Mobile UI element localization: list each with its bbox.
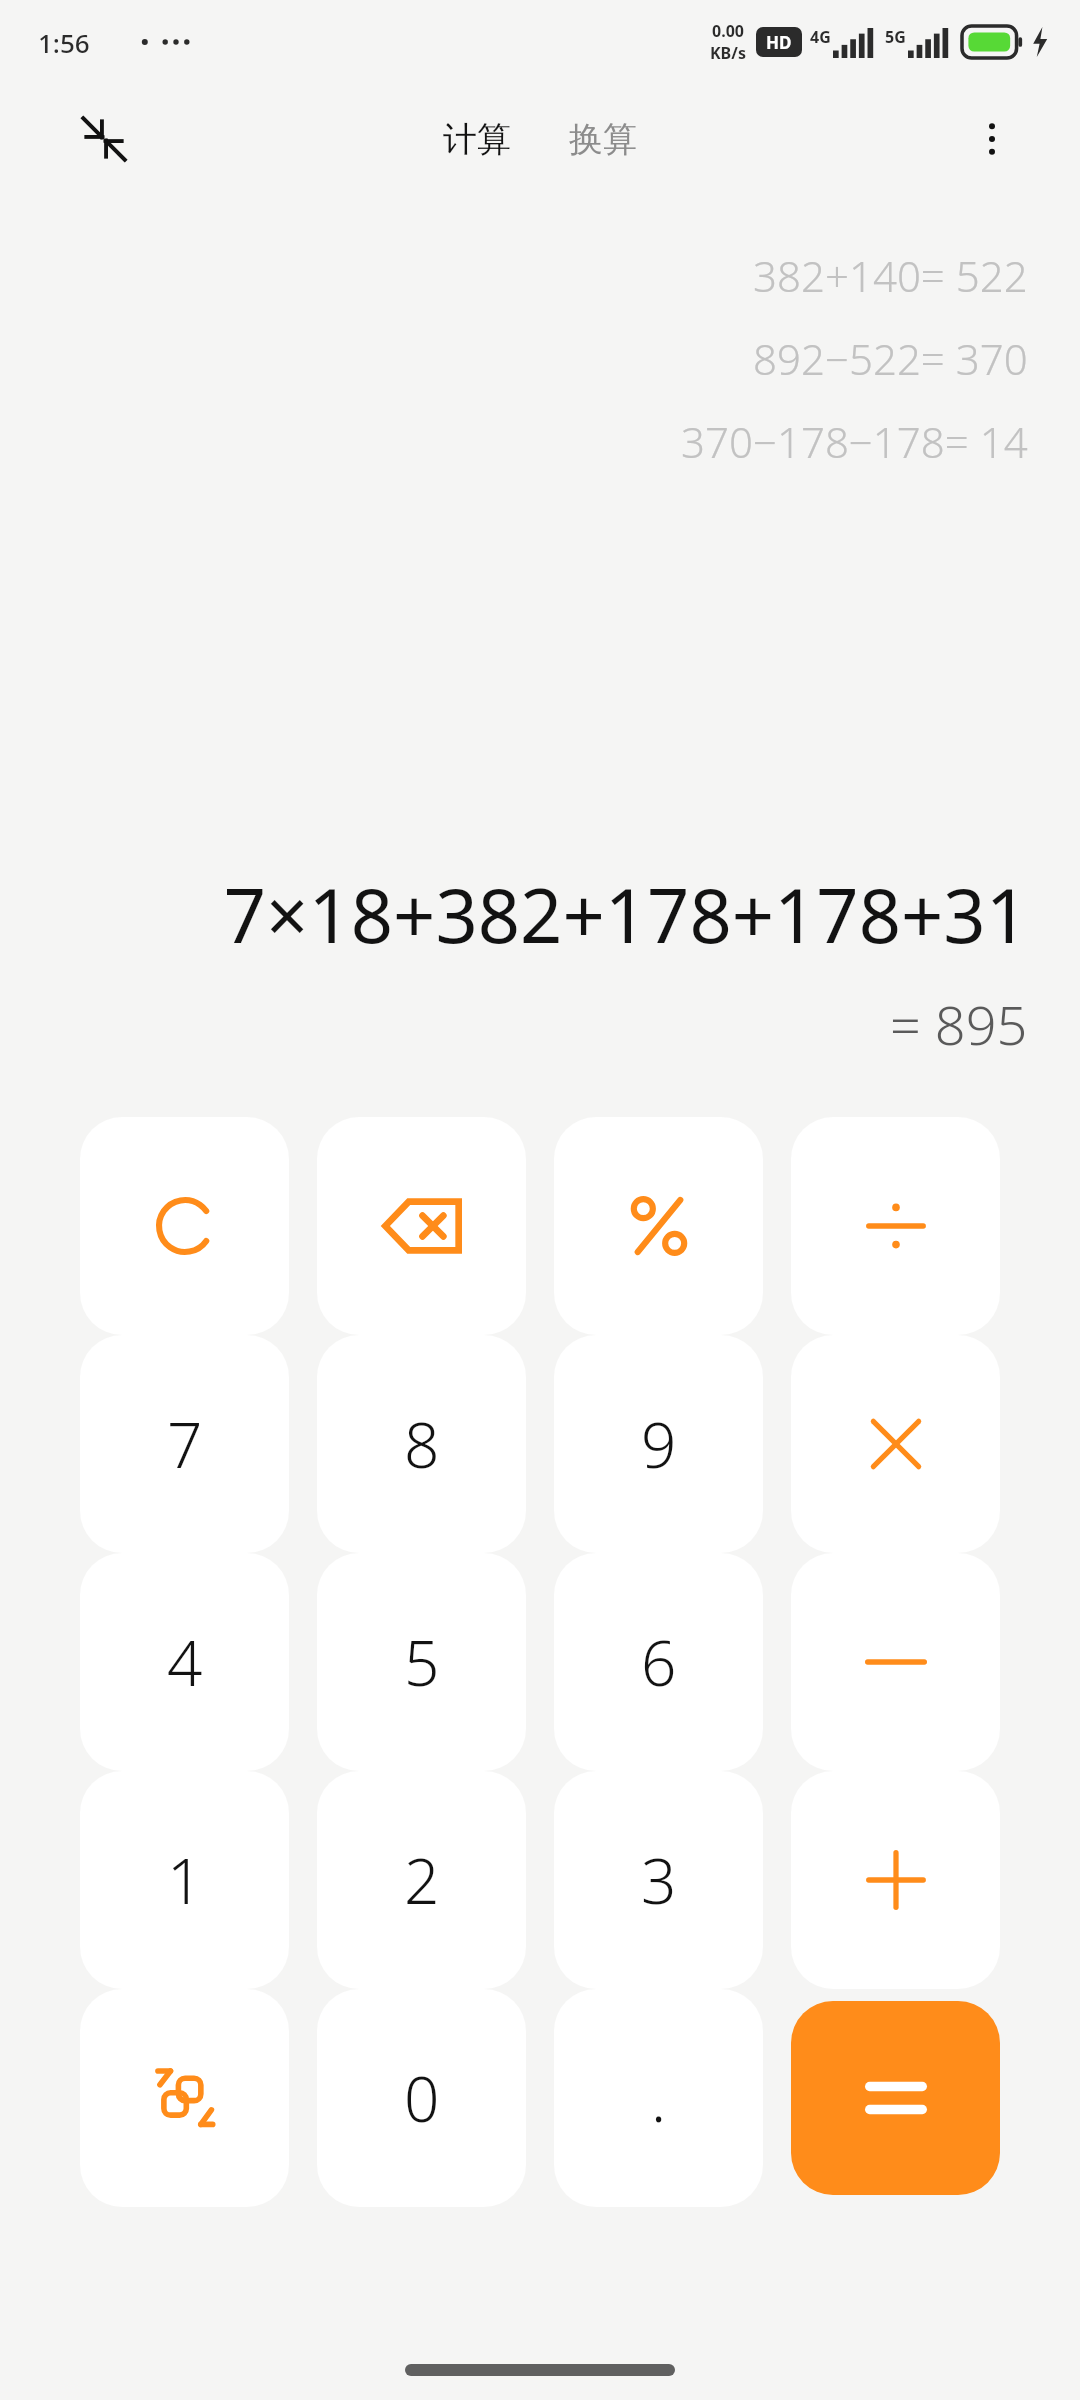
staticText: 1 [167, 1838, 203, 1922]
staticText: 4 [167, 1620, 203, 1704]
staticText: 5G [885, 26, 906, 48]
staticText: 0.00 [712, 20, 744, 42]
button[interactable]: Divide [791, 1117, 1000, 1335]
button[interactable]: Collapse [68, 103, 140, 175]
staticText: 3 [641, 1838, 677, 1922]
staticText: 4G [810, 26, 831, 48]
button[interactable]: 8 [317, 1335, 526, 1553]
button[interactable]: Backspace [317, 1117, 526, 1335]
button[interactable]: Clear [80, 1117, 289, 1335]
staticText: 1:56 [38, 25, 90, 60]
button[interactable]: 9 [554, 1335, 763, 1553]
button[interactable]: Scientific mode [80, 1989, 289, 2207]
staticText: 0 [404, 2056, 440, 2140]
button[interactable]: . [554, 1989, 763, 2207]
staticText: KB/s [710, 42, 746, 64]
staticText: 892−522= 370 [753, 330, 1028, 387]
button[interactable]: 换算 [557, 108, 649, 171]
staticText: . [651, 2056, 667, 2140]
button[interactable]: 计算 [431, 108, 523, 171]
staticText: 7×18+382+178+178+31 [223, 864, 1028, 965]
button[interactable]: 3 [554, 1771, 763, 1989]
button[interactable]: Equals [791, 2001, 1000, 2195]
button[interactable]: 7 [80, 1335, 289, 1553]
staticText: 382+140= 522 [753, 247, 1028, 304]
staticText: 7 [167, 1402, 203, 1486]
button[interactable]: 2 [317, 1771, 526, 1989]
button[interactable]: More options [956, 103, 1028, 175]
button[interactable]: 6 [554, 1553, 763, 1771]
staticText: 计算 [443, 118, 511, 161]
button[interactable]: 4 [80, 1553, 289, 1771]
staticText: 8 [404, 1402, 440, 1486]
button[interactable]: 5 [317, 1553, 526, 1771]
staticText: = 895 [890, 987, 1028, 1061]
staticText: 5 [404, 1620, 440, 1704]
button[interactable]: 0 [317, 1989, 526, 2207]
staticText: 9 [641, 1402, 677, 1486]
button[interactable]: 1 [80, 1771, 289, 1989]
staticText: 370−178−178= 14 [681, 413, 1028, 470]
button[interactable]: Multiply [791, 1335, 1000, 1553]
button[interactable]: Minus [791, 1553, 1000, 1771]
staticText: 换算 [569, 118, 637, 161]
staticText: 2 [404, 1838, 440, 1922]
staticText: HD [766, 31, 792, 54]
staticText: 6 [641, 1620, 677, 1704]
button[interactable]: Percent [554, 1117, 763, 1335]
button[interactable]: Plus [791, 1771, 1000, 1989]
